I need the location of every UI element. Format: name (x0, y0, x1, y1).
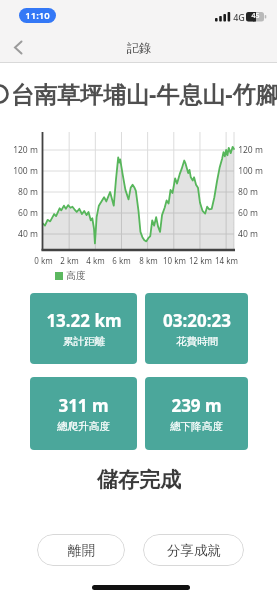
staticText: 239 m (171, 394, 222, 417)
staticText: 4 km (86, 255, 105, 266)
staticText: 6 km (112, 255, 131, 266)
staticText: 80 m (238, 186, 258, 198)
staticText: 100 m (238, 165, 263, 177)
staticText: 45 (251, 11, 260, 21)
staticText: 120 m (238, 144, 263, 156)
staticText: 分享成就 (167, 542, 221, 559)
staticText: 80 m (18, 186, 38, 198)
staticText: 0 km (34, 255, 53, 266)
staticText: 60 m (18, 207, 38, 219)
button[interactable]: 239 m (145, 377, 248, 450)
staticText: 12 km (189, 255, 212, 266)
staticText: 10 km (163, 255, 186, 266)
button[interactable]: 分享成就 (143, 534, 244, 566)
button[interactable]: 311 m (30, 377, 137, 450)
staticText: 2 km (60, 255, 79, 266)
staticText: 311 m (58, 394, 109, 417)
staticText: 120 m (13, 144, 38, 156)
button[interactable]: 離開 (37, 534, 125, 566)
button[interactable] (12, 40, 25, 55)
button[interactable]: 03:20:23 (145, 293, 248, 364)
staticText: 8 km (139, 255, 158, 266)
staticText: 4G (233, 11, 245, 23)
staticText: 100 m (13, 165, 38, 177)
staticText: 累計距離 (63, 335, 105, 348)
staticText: 40 m (18, 228, 38, 240)
staticText: 台南草坪埔山-牛息山-竹腳寮山 (11, 78, 277, 109)
staticText: 40 m (238, 228, 258, 240)
staticText: 離開 (68, 542, 95, 559)
staticText: 花費時間 (176, 335, 218, 348)
staticText: 記錄 (127, 40, 151, 55)
staticText: 03:20:23 (163, 309, 231, 332)
staticText: 60 m (238, 207, 258, 219)
staticText: 總爬升高度 (57, 420, 110, 433)
staticText: 11:10 (25, 9, 50, 22)
staticText: 儲存完成 (97, 467, 181, 493)
staticText: 14 km (215, 255, 238, 266)
staticText: 總下降高度 (170, 420, 223, 433)
button[interactable]: 13.22 km (30, 293, 137, 364)
staticText: 13.22 km (46, 309, 122, 332)
staticText: 高度 (66, 269, 86, 282)
